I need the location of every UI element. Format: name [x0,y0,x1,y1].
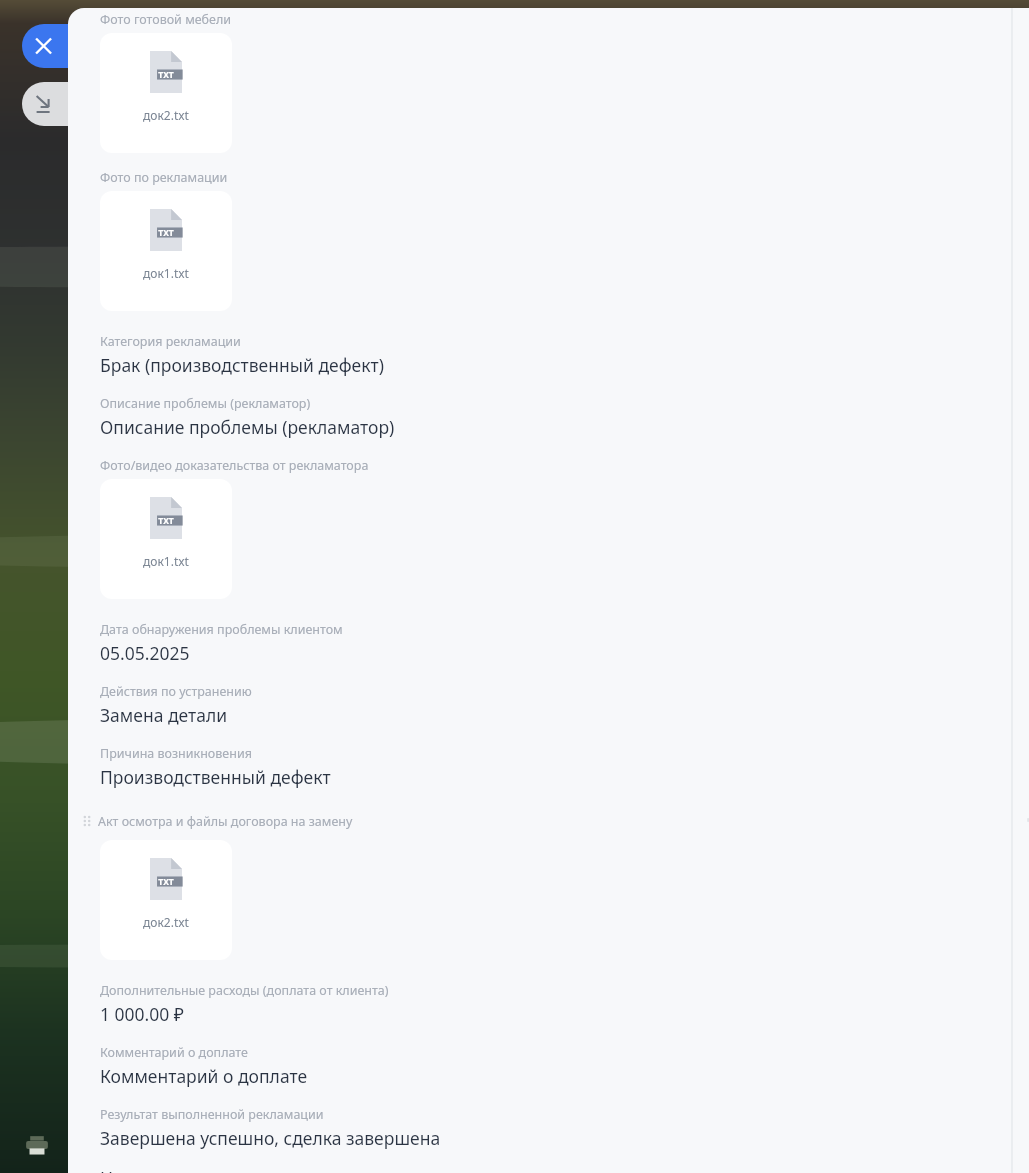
staticText: Описание проблемы (рекламатор) [100,415,395,439]
staticText: Фото/видео доказательства от рекламатора [100,457,369,474]
staticText: Результат выполненной рекламации [100,1106,324,1123]
staticText: Брак (производственный дефект) [100,353,384,377]
staticText: Причина возникновения [100,745,252,762]
staticText: Комментарий о доплате [100,1064,308,1088]
staticText: Замена детали [100,703,228,727]
staticText: 05.05.2025 [100,641,190,665]
staticText: TXT [158,227,174,239]
staticText: Акт осмотра и файлы договора на замену [98,813,353,830]
button[interactable]: Close [22,24,94,68]
staticText: Завершена успешно, сделка завершена [100,1126,441,1150]
button[interactable]: TXT [100,191,232,311]
button[interactable]: TXT [100,840,232,960]
staticText: Категория рекламации [100,333,241,350]
staticText: Фото по рекламации [100,169,228,186]
button[interactable]: TXT [100,479,232,599]
button[interactable]: Settings [1023,806,1029,834]
staticText: Действия по устранению [100,683,252,700]
staticText: Производственный дефект [100,765,331,789]
staticText: 1 000.00 ₽ [100,1002,185,1026]
staticText: Нужна услуга доставки [100,1166,296,1173]
staticText: док1.txt [143,265,189,281]
staticText: Комментарий о доплате [100,1044,248,1061]
button[interactable]: Download [22,82,94,126]
staticText: Дополнительные расходы (доплата от клиен… [100,982,389,999]
button[interactable]: Print [20,1128,54,1162]
staticText: TXT [158,515,174,527]
staticText: TXT [158,69,174,81]
staticText: Фото готовой мебели [100,11,232,28]
staticText: док1.txt [143,553,189,569]
staticText: TXT [158,876,174,888]
staticText: Описание проблемы (рекламатор) [100,395,311,412]
staticText: Дата обнаружения проблемы клиентом [100,621,343,638]
staticText: док2.txt [143,107,189,123]
staticText: док2.txt [143,914,189,930]
button[interactable]: TXT [100,33,232,153]
